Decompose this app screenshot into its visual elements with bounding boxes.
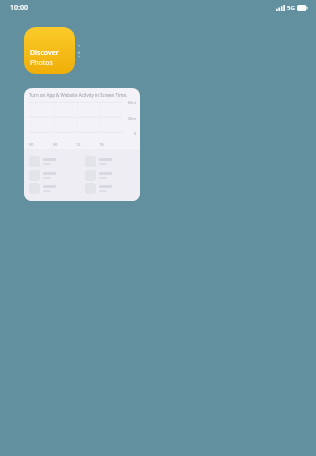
staticText: 10:00 [10, 3, 28, 13]
button[interactable]: Turn on App & Website Activity in Screen… [24, 88, 140, 201]
staticText: 00 [29, 142, 34, 147]
button[interactable]: App icon [29, 156, 79, 167]
staticText: 5G [287, 4, 295, 12]
staticText: Discover [30, 48, 59, 58]
staticText: 06 [53, 142, 58, 147]
staticText: 12 [76, 142, 81, 147]
button[interactable]: App icon [29, 170, 79, 181]
button[interactable]: App icon [29, 183, 79, 194]
staticText: 18 [99, 142, 104, 147]
button[interactable]: App icon [85, 156, 135, 167]
staticText: 60m [127, 100, 136, 105]
button[interactable]: Discover [24, 27, 75, 74]
staticText: 30m [127, 116, 136, 121]
button[interactable]: App icon [85, 170, 135, 181]
staticText: 0 [133, 131, 136, 136]
button[interactable]: App icon [85, 183, 135, 194]
staticText: Photos [30, 58, 53, 68]
staticText: Turn on App & Website Activity in Screen… [29, 92, 128, 98]
